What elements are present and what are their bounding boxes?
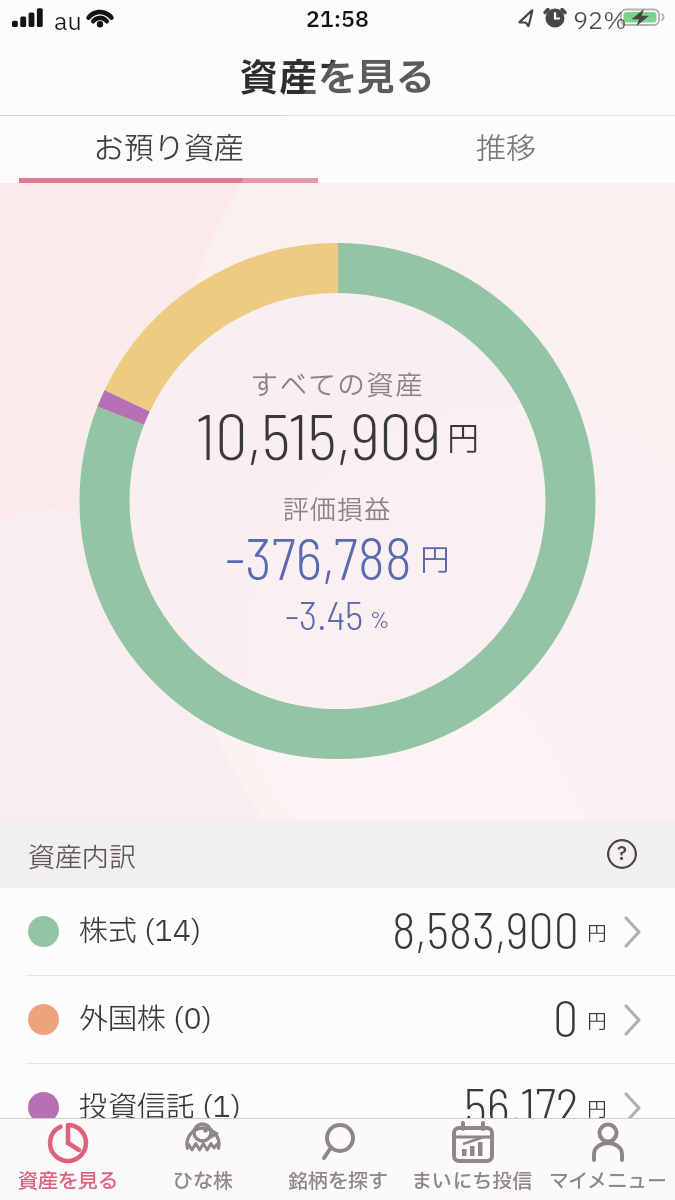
staticText: 円 (587, 920, 607, 950)
staticText: -3.45 (285, 590, 364, 638)
staticText: 56,172 (464, 1075, 579, 1135)
button[interactable]: ? (607, 839, 637, 869)
button[interactable]: ひな株 (135, 1119, 270, 1200)
button[interactable]: 銘柄を探す (270, 1119, 405, 1200)
staticText: % (370, 604, 390, 633)
staticText: 円 (587, 1096, 607, 1126)
staticText: 円 (587, 1008, 607, 1038)
staticText: 株式 (14) (79, 910, 202, 953)
staticText: 円 (420, 539, 450, 584)
staticText: 8,583,900 (392, 899, 579, 959)
staticText: 推移 (476, 127, 536, 172)
staticText: 銘柄を探す (288, 1167, 388, 1197)
button[interactable]: 推移 (337, 116, 675, 183)
staticText: まいにち投信 (412, 1167, 533, 1197)
button[interactable]: まいにち投信 (405, 1119, 540, 1200)
staticText: ひな株 (173, 1167, 233, 1197)
staticText: au (54, 5, 82, 41)
staticText: 92% (573, 4, 627, 40)
button[interactable]: 投資信託 (1) (0, 1064, 675, 1151)
staticText: お預り資産 (94, 127, 244, 172)
staticText: ? (617, 840, 627, 868)
button[interactable]: 株式 (14) (0, 888, 675, 975)
button[interactable]: 資産を見る (0, 1119, 135, 1200)
button[interactable]: お預り資産 (0, 116, 337, 183)
staticText: 0 (553, 987, 579, 1047)
staticText: 資産を見る (240, 51, 436, 108)
button[interactable]: 外国株 (0) (0, 976, 675, 1063)
staticText: 外国株 (0) (79, 998, 212, 1041)
staticText: 資産内訳 (28, 838, 136, 878)
staticText: 10,515,909 (196, 396, 441, 473)
staticText: すべての資産 (251, 366, 425, 406)
staticText: 評価損益 (283, 491, 392, 530)
staticText: 円 (447, 416, 480, 465)
button[interactable]: マイメニュー (540, 1119, 675, 1200)
staticText: マイメニュー (549, 1167, 667, 1197)
staticText: -376,788 (225, 522, 412, 592)
staticText: 21:58 (306, 4, 369, 37)
staticText: 投資信託 (1) (79, 1086, 241, 1129)
staticText: 資産を見る (18, 1167, 118, 1197)
